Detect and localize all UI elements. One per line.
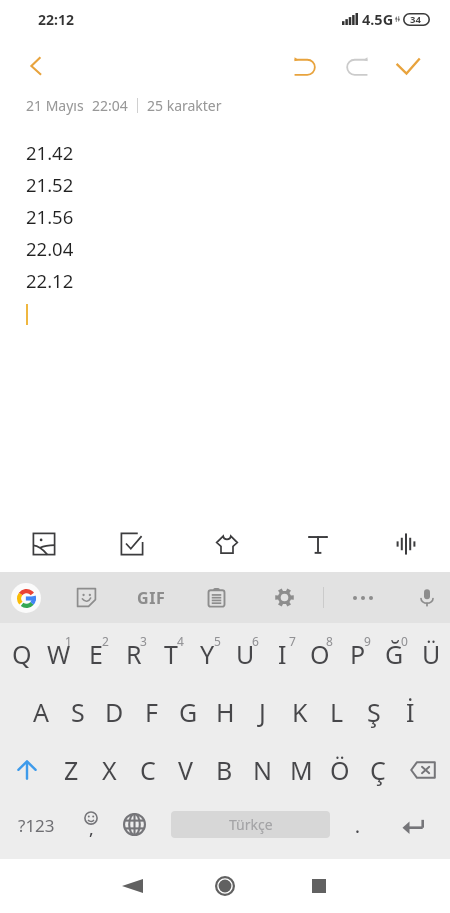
button[interactable]: U — [227, 627, 264, 681]
button[interactable]: G — [170, 685, 207, 739]
button[interactable]: Google — [3, 572, 49, 623]
button[interactable]: T — [152, 627, 189, 681]
staticText: GIF — [137, 587, 166, 609]
button[interactable]: J — [244, 685, 281, 739]
button[interactable]: Undo — [284, 44, 328, 88]
button[interactable]: More options — [340, 572, 386, 623]
button[interactable]: D — [96, 685, 133, 739]
button[interactable]: Back — [109, 859, 155, 913]
staticText: ?123 — [18, 814, 55, 837]
button[interactable]: Style — [204, 521, 250, 567]
button[interactable]: V — [167, 743, 205, 797]
staticText: X — [102, 753, 117, 787]
staticText: Ç — [370, 753, 386, 787]
button[interactable]: Ü — [413, 627, 450, 681]
button[interactable]: Ö — [321, 743, 359, 797]
button[interactable]: Done — [385, 44, 429, 88]
staticText: K — [292, 695, 308, 729]
button[interactable]: Türkçe — [171, 811, 330, 838]
button[interactable]: E — [77, 627, 114, 681]
button[interactable]: S — [59, 685, 96, 739]
button[interactable]: H — [207, 685, 244, 739]
staticText: 5 — [214, 633, 221, 649]
staticText: Ö — [330, 753, 350, 787]
button[interactable]: Settings — [261, 572, 307, 623]
button[interactable]: B — [205, 743, 243, 797]
staticText: 22:12 — [38, 10, 74, 29]
button[interactable]: K — [281, 685, 318, 739]
button[interactable]: L — [318, 685, 355, 739]
button[interactable]: Redo — [334, 44, 378, 88]
staticText: Z — [64, 753, 79, 787]
button[interactable]: Text format — [295, 521, 341, 567]
staticText: S — [71, 695, 85, 729]
button[interactable]: M — [282, 743, 320, 797]
staticText: 6 — [252, 633, 259, 649]
button[interactable]: R — [115, 627, 152, 681]
staticText: 7 — [289, 633, 296, 649]
staticText: E — [89, 637, 103, 671]
button[interactable]: Insert image — [21, 521, 67, 567]
button[interactable]: İ — [392, 685, 429, 739]
button[interactable]: N — [244, 743, 282, 797]
button[interactable]: Y — [189, 627, 226, 681]
button[interactable]: Ç — [359, 743, 397, 797]
button[interactable]: Home — [202, 859, 248, 913]
button[interactable]: Shift — [5, 743, 49, 797]
button[interactable]: C — [129, 743, 167, 797]
staticText: 4 — [177, 633, 184, 649]
staticText: T — [164, 637, 178, 671]
staticText: Y — [200, 637, 215, 671]
button[interactable]: Voice input — [404, 572, 450, 623]
button[interactable]: O — [301, 627, 338, 681]
button[interactable]: F — [133, 685, 170, 739]
staticText: Q — [12, 637, 32, 671]
staticText: İ — [406, 695, 415, 729]
button[interactable]: A — [22, 685, 59, 739]
staticText: D — [105, 695, 124, 729]
staticText: 9 — [364, 633, 371, 649]
button[interactable]: Z — [52, 743, 90, 797]
button[interactable]: X — [90, 743, 128, 797]
button[interactable]: Enter — [390, 800, 436, 852]
staticText: 21.56 — [26, 204, 74, 229]
button[interactable]: Checklist — [109, 521, 155, 567]
staticText: V — [178, 753, 194, 787]
staticText: 3 — [140, 633, 147, 649]
staticText: P — [350, 637, 366, 671]
button[interactable]: GIF — [128, 572, 174, 623]
button[interactable]: Back — [14, 44, 58, 88]
staticText: 22:04 — [92, 96, 128, 115]
staticText: I — [278, 637, 287, 671]
staticText: 1 — [65, 633, 72, 649]
button[interactable]: Ğ — [376, 627, 413, 681]
button[interactable]: Recent apps — [296, 859, 342, 913]
staticText: G — [179, 695, 198, 729]
button[interactable]: I — [264, 627, 301, 681]
staticText: C — [140, 753, 156, 787]
staticText: Ğ — [385, 637, 404, 671]
button[interactable]: ?123 — [12, 800, 60, 852]
staticText: 22.04 — [26, 236, 74, 261]
button[interactable]: Ş — [355, 685, 392, 739]
button[interactable]: P — [339, 627, 376, 681]
button[interactable]: Record audio — [383, 521, 429, 567]
button[interactable]: W — [40, 627, 77, 681]
button[interactable]: Clipboard — [193, 572, 239, 623]
staticText: H — [216, 695, 235, 729]
button[interactable]: Stickers — [63, 572, 109, 623]
staticText: O — [310, 637, 330, 671]
button[interactable]: Q — [3, 627, 40, 681]
button[interactable]: Emoji — [68, 800, 114, 852]
button[interactable]: . — [334, 800, 380, 852]
staticText: Türkçe — [229, 815, 273, 834]
button[interactable]: Backspace — [401, 743, 445, 797]
staticText: A — [33, 695, 49, 729]
staticText: Ü — [422, 637, 441, 671]
staticText: . — [355, 814, 360, 839]
staticText: F — [145, 695, 158, 729]
button[interactable]: Change language — [110, 798, 158, 850]
staticText: 21 Mayıs — [26, 96, 84, 115]
staticText: L — [330, 695, 344, 729]
staticText: N — [253, 753, 273, 787]
